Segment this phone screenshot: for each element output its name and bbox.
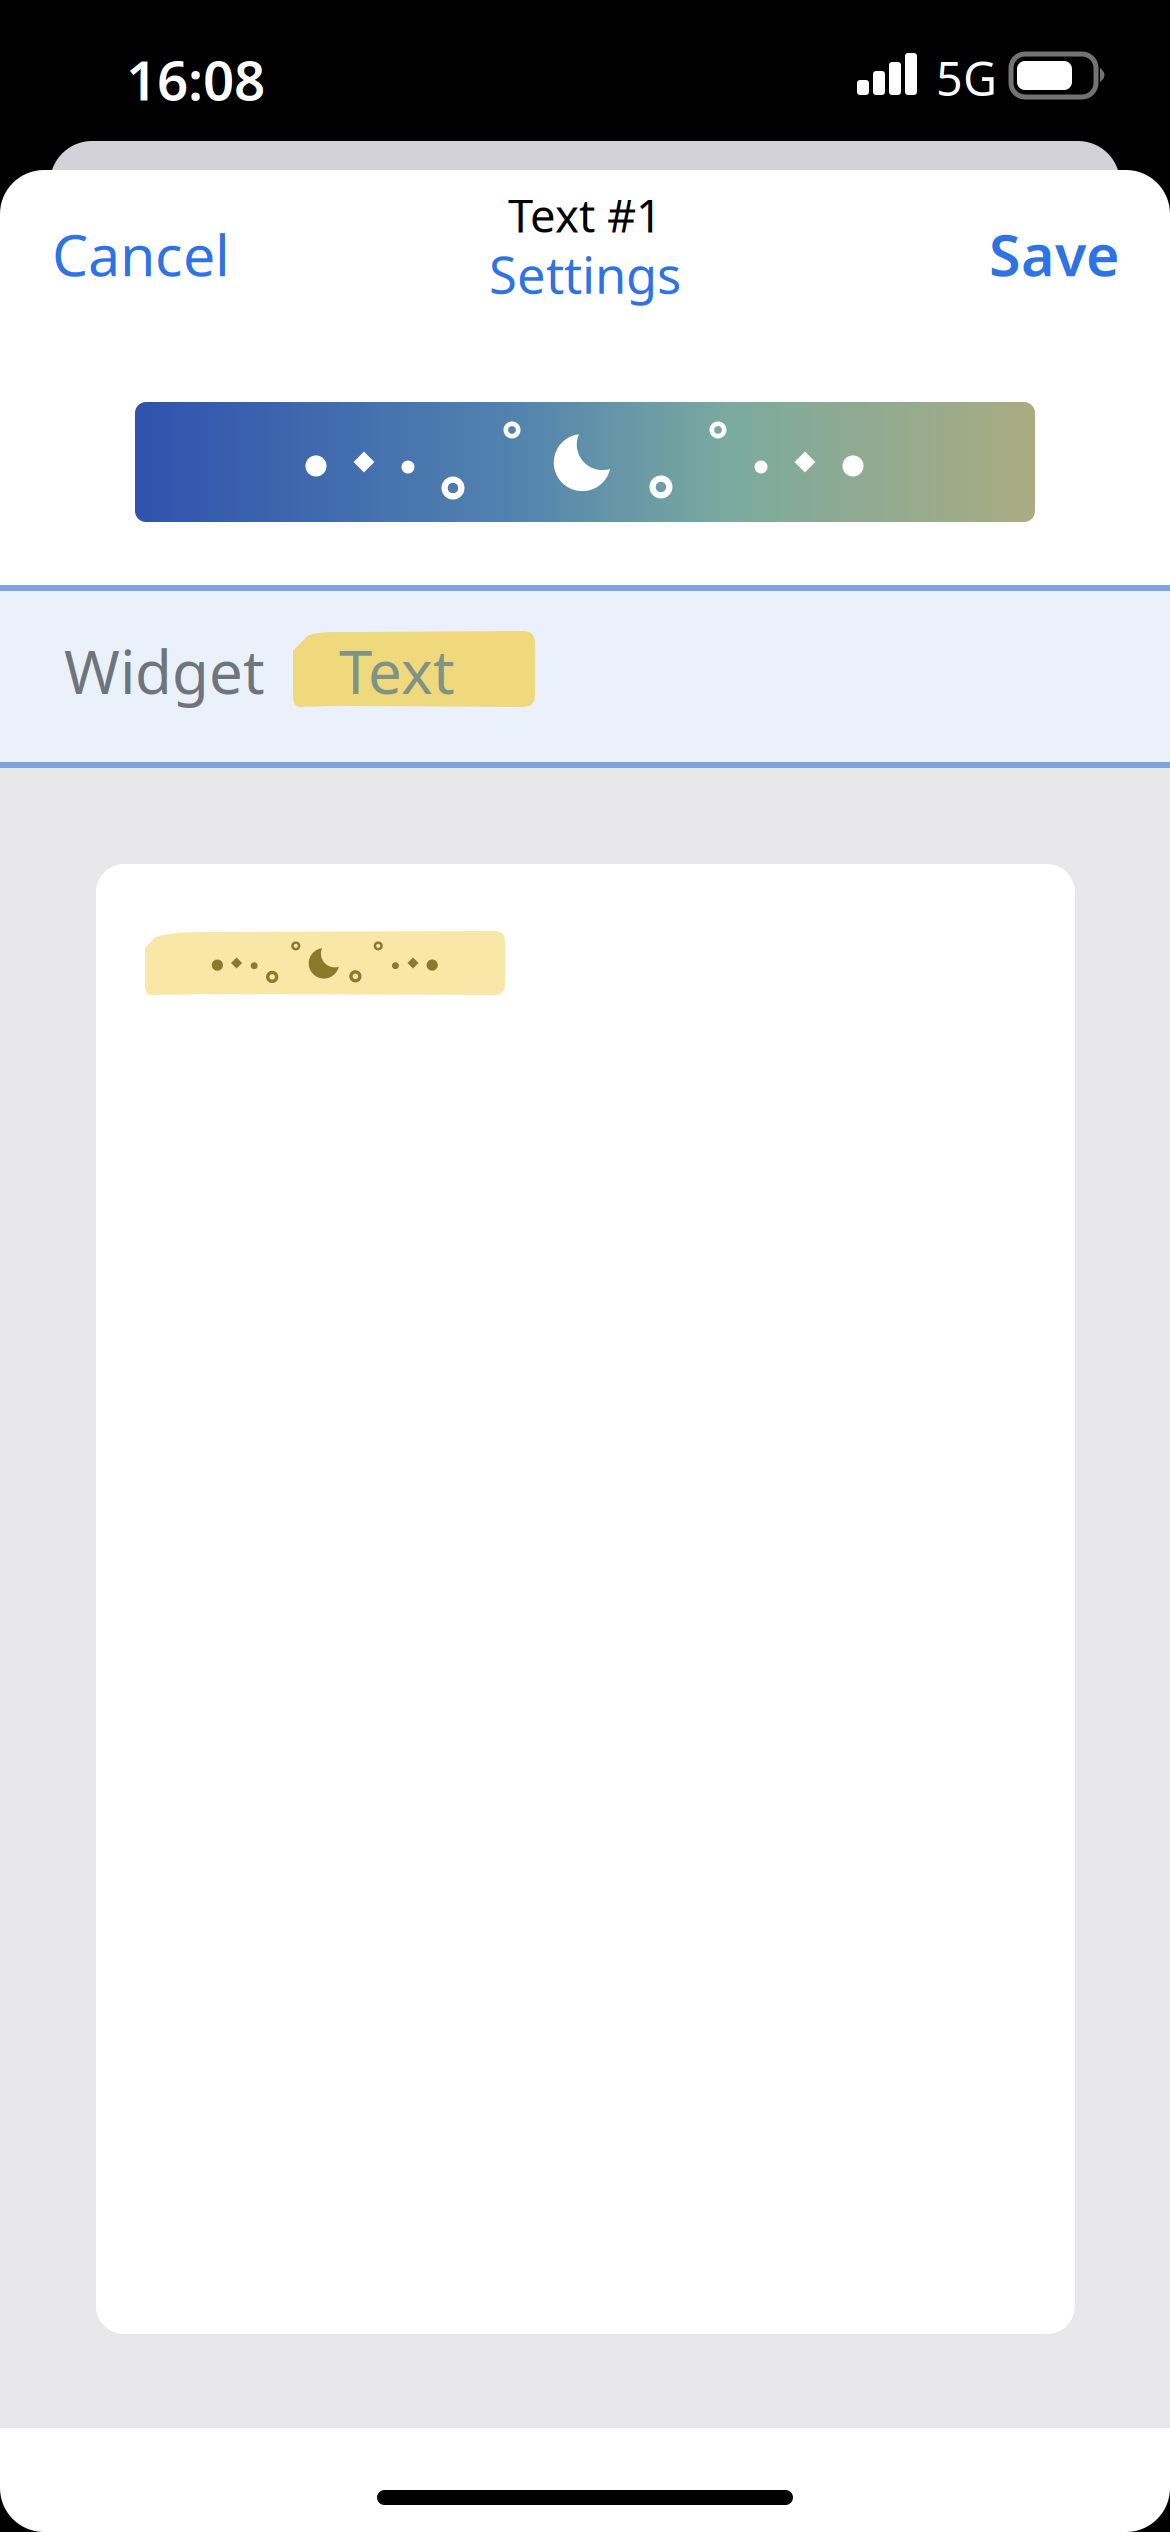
staticText: 16:08 bbox=[126, 43, 265, 116]
staticText: Save bbox=[989, 216, 1120, 292]
staticText: 5G bbox=[936, 47, 997, 109]
button[interactable]: Settings bbox=[0, 246, 1170, 302]
staticText: Text bbox=[339, 631, 455, 711]
staticText: Widget bbox=[64, 631, 265, 711]
button[interactable]: Save bbox=[900, 206, 1120, 302]
button[interactable]: Cancel bbox=[52, 206, 282, 302]
staticText: Settings bbox=[489, 240, 681, 308]
staticText: Text #1 bbox=[508, 185, 662, 245]
button[interactable]: Widget preview bbox=[135, 402, 1035, 522]
staticText: Cancel bbox=[52, 216, 230, 292]
